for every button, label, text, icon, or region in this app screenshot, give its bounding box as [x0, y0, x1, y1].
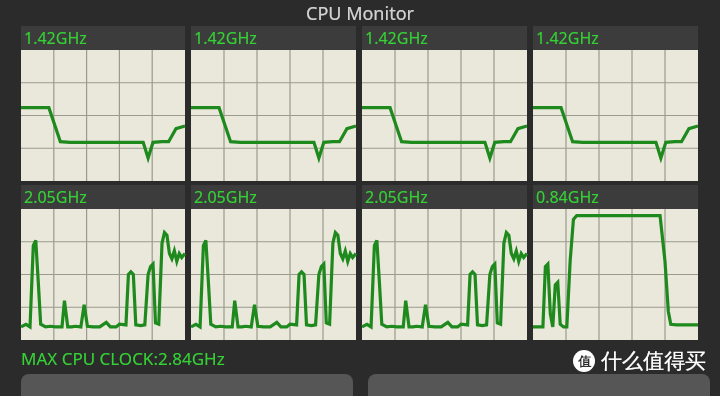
staticText: 2.05GHz — [24, 186, 87, 208]
button[interactable]: 1.42GHz — [191, 26, 356, 181]
button[interactable]: 1.42GHz — [21, 26, 185, 181]
button[interactable]: 2.05GHz — [191, 185, 356, 340]
staticText: 什么值得买 — [601, 348, 706, 374]
staticText: 值 — [578, 353, 591, 369]
staticText: 0.84GHz — [536, 186, 599, 208]
other: 什么值得买 watermark — [573, 348, 706, 374]
staticText: CPU Monitor — [306, 1, 414, 26]
button[interactable]: 1.42GHz — [533, 26, 698, 181]
button[interactable]: 1.42GHz — [362, 26, 527, 181]
staticText: 2.05GHz — [365, 186, 428, 208]
staticText: 1.42GHz — [536, 27, 599, 49]
staticText: 1.42GHz — [194, 27, 257, 49]
button[interactable]: 2.05GHz — [362, 185, 527, 340]
staticText: 1.42GHz — [365, 27, 428, 49]
staticText: 1.42GHz — [24, 27, 87, 49]
staticText: MAX CPU CLOCK:2.84GHz — [21, 347, 225, 370]
button[interactable]: 0.84GHz — [533, 185, 698, 340]
staticText: 2.05GHz — [194, 186, 257, 208]
button[interactable]: 2.05GHz — [21, 185, 185, 340]
